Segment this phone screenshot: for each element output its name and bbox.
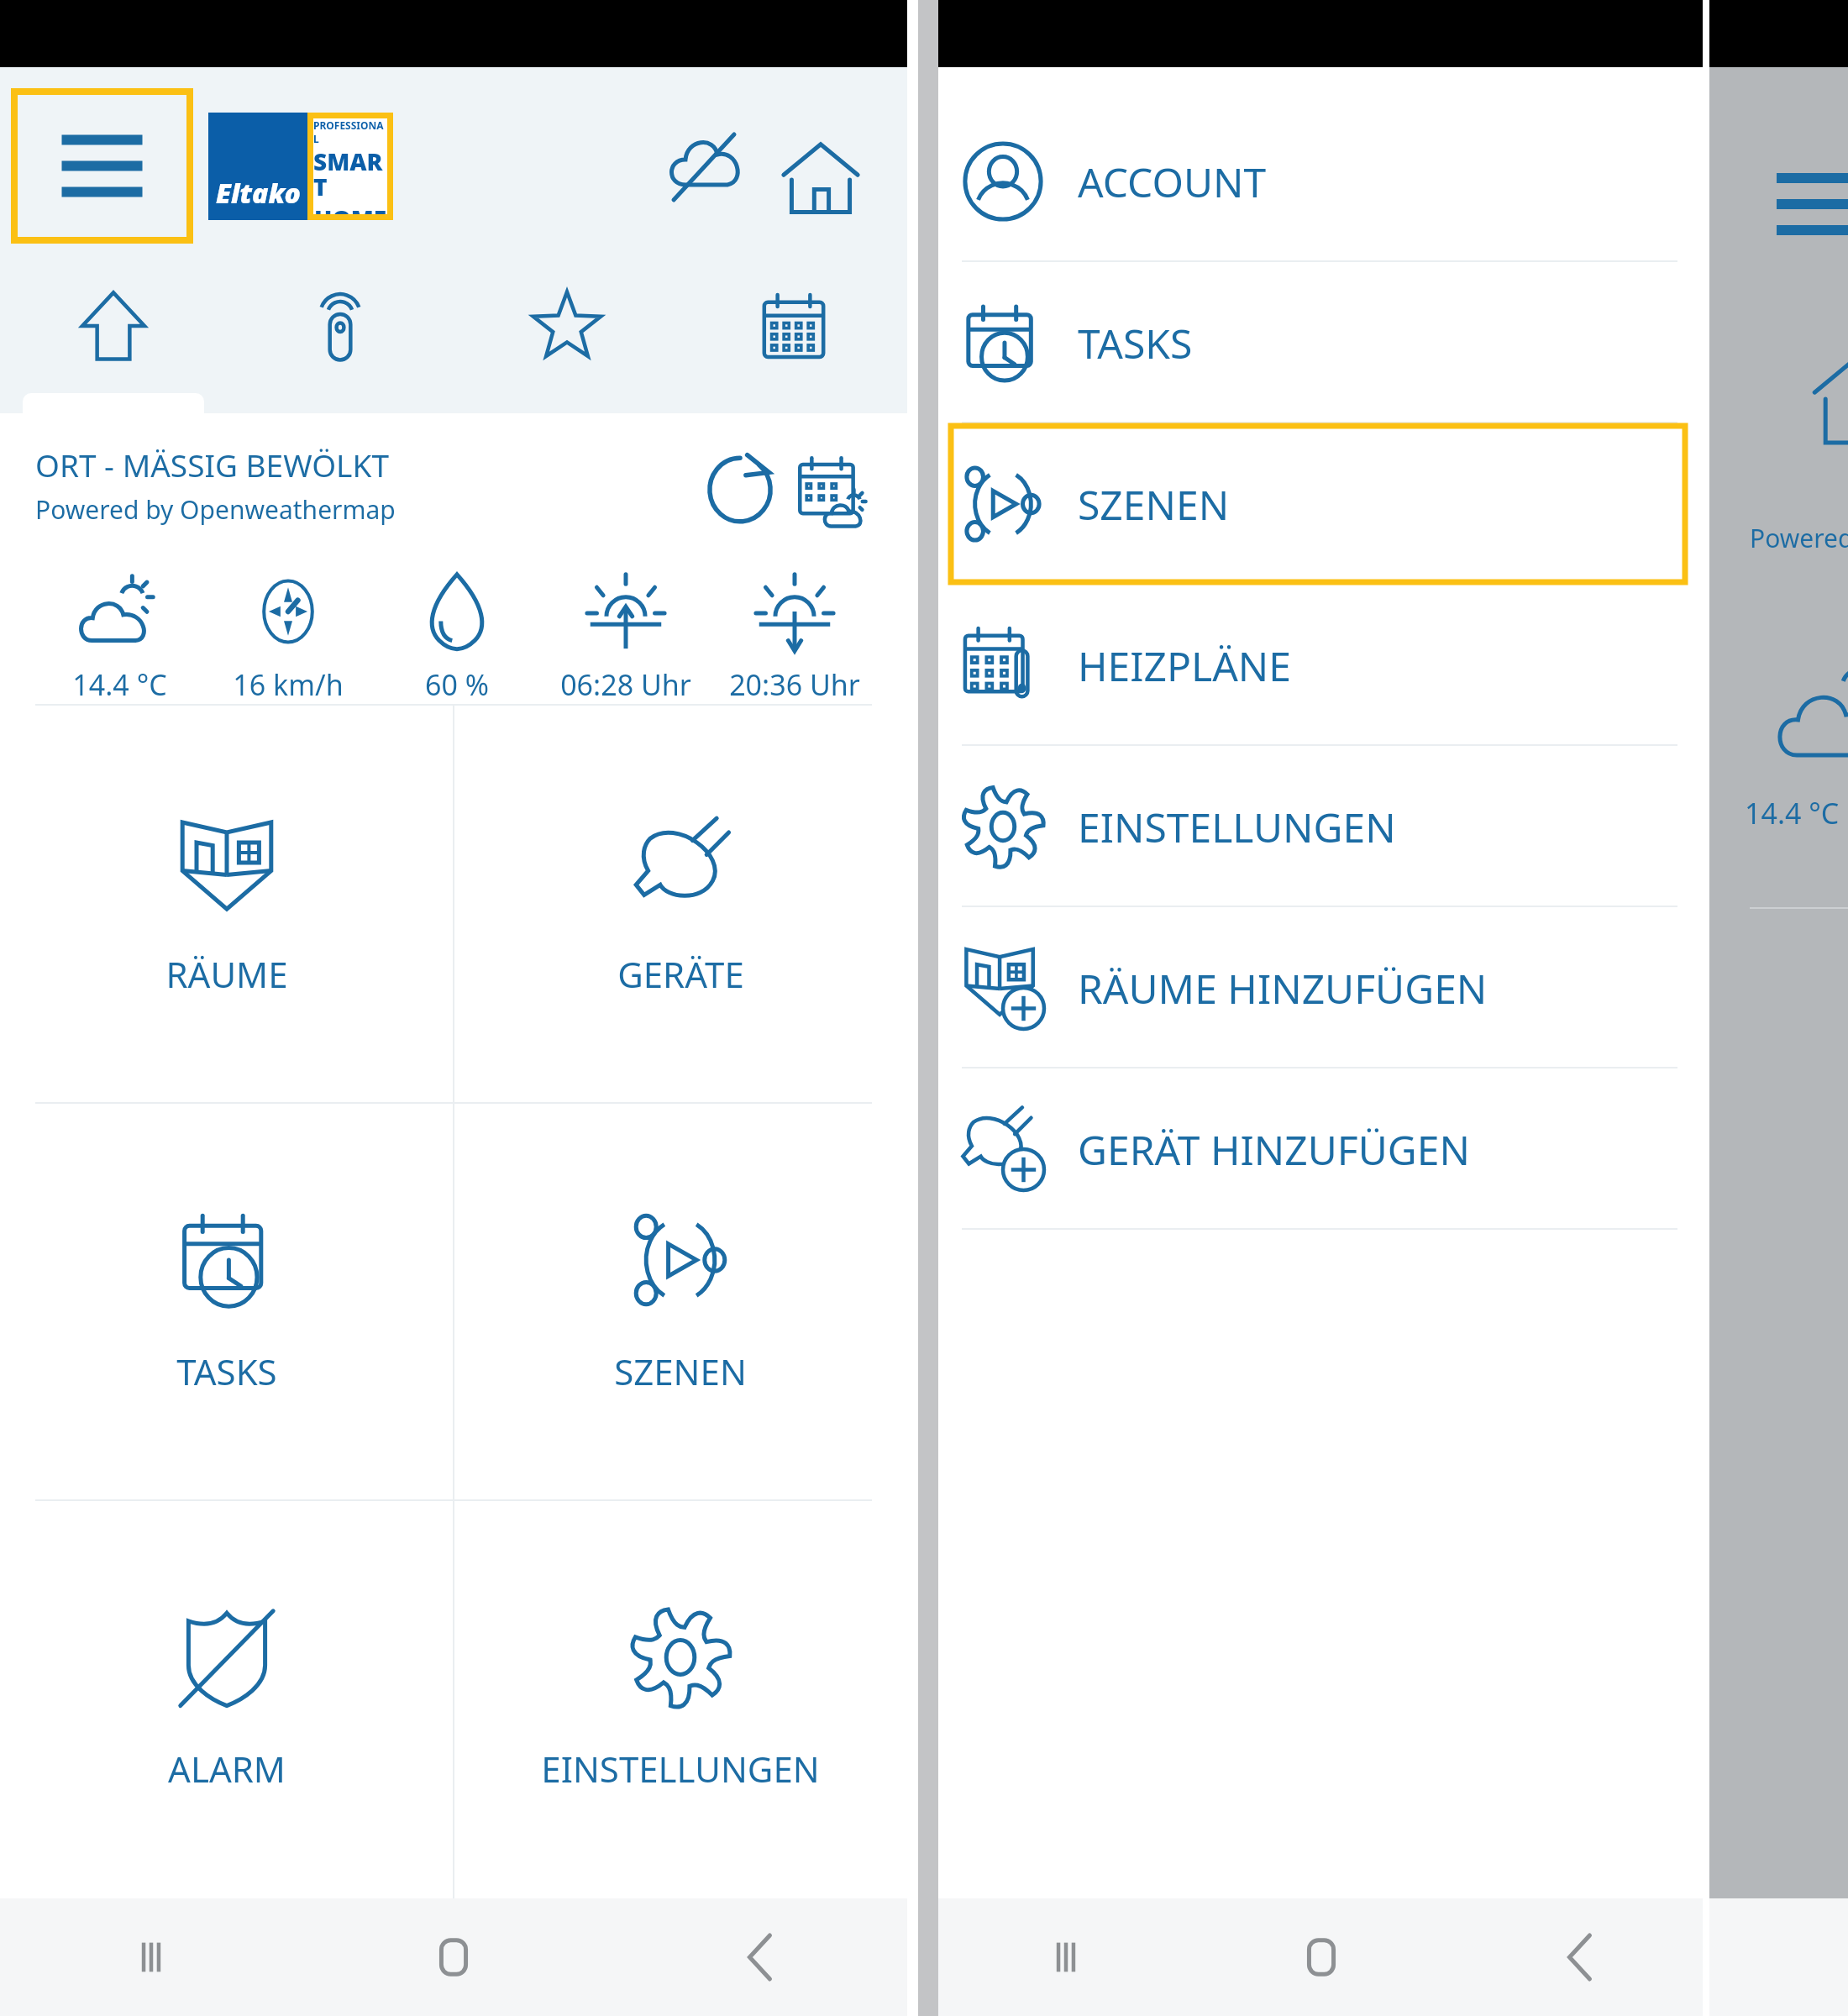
staticText: PROFESSIONAL <box>313 118 387 145</box>
staticText: GERÄT HINZUFÜGEN <box>1078 1122 1470 1177</box>
button[interactable]: Back <box>1448 1898 1703 2016</box>
staticText: TASKS <box>176 1347 277 1395</box>
button[interactable]: Recents <box>0 1898 302 2016</box>
button[interactable]: SZENEN <box>454 1104 907 1501</box>
staticText: Eltako <box>216 175 301 212</box>
button[interactable]: Back <box>605 1898 907 2016</box>
staticText: HOME <box>314 202 387 214</box>
staticText: RÄUME HINZUFÜGEN <box>1078 961 1488 1016</box>
button[interactable]: EINSTELLUNGEN <box>454 1501 907 1898</box>
staticText: SMART <box>313 145 387 202</box>
staticText: 20:36 Uhr <box>729 665 860 704</box>
staticText: Powered <box>1750 521 1848 555</box>
staticText: 60 % <box>425 665 489 704</box>
button[interactable]: Forecast <box>786 444 879 536</box>
staticText: RÄUME <box>165 950 288 998</box>
button[interactable]: ACCOUNT <box>938 101 1703 262</box>
button[interactable]: Home tab <box>0 265 227 413</box>
button[interactable]: SZENEN <box>938 423 1703 585</box>
button[interactable]: Refresh <box>694 444 786 536</box>
staticText: ACCOUNT <box>1078 155 1267 209</box>
button[interactable]: Home <box>764 109 877 223</box>
button[interactable]: Home <box>1194 1898 1448 2016</box>
button[interactable]: TASKS <box>0 1104 454 1501</box>
staticText: TASKS <box>1078 316 1193 370</box>
button[interactable]: ALARM <box>0 1501 454 1898</box>
button[interactable]: Favourites tab <box>454 265 680 413</box>
button[interactable]: RÄUME HINZUFÜGEN <box>938 907 1703 1068</box>
button[interactable]: RÄUME <box>0 706 454 1104</box>
staticText: SZENEN <box>614 1347 747 1395</box>
button[interactable]: HEIZPLÄNE <box>938 585 1703 746</box>
staticText: 06:28 Uhr <box>560 665 691 704</box>
staticText: 14.4 °C <box>72 665 167 704</box>
staticText: Powered by Openweathermap <box>35 492 396 527</box>
button[interactable]: GERÄTE <box>454 706 907 1104</box>
button[interactable]: Recents <box>938 1898 1194 2016</box>
button[interactable]: EINSTELLUNGEN <box>938 746 1703 907</box>
button[interactable]: Calendar tab <box>680 265 907 413</box>
staticText: EINSTELLUNGEN <box>541 1745 820 1793</box>
staticText: ALARM <box>168 1745 286 1793</box>
staticText: EINSTELLUNGEN <box>1078 800 1396 854</box>
button[interactable]: Home <box>302 1898 605 2016</box>
button[interactable]: Cloud offline <box>650 109 764 223</box>
staticText: 16 km/h <box>233 665 344 704</box>
button[interactable]: TASKS <box>938 262 1703 423</box>
button[interactable]: Menu <box>11 88 193 244</box>
button[interactable]: Devices tab <box>227 265 454 413</box>
staticText: GERÄTE <box>617 950 744 998</box>
staticText: SZENEN <box>1078 477 1230 532</box>
staticText: 14.4 °C <box>1745 794 1840 832</box>
staticText: ORT - MÄSSIG BEWÖLKT <box>35 444 389 486</box>
button[interactable]: GERÄT HINZUFÜGEN <box>938 1068 1703 1230</box>
staticText: HEIZPLÄNE <box>1078 638 1292 693</box>
